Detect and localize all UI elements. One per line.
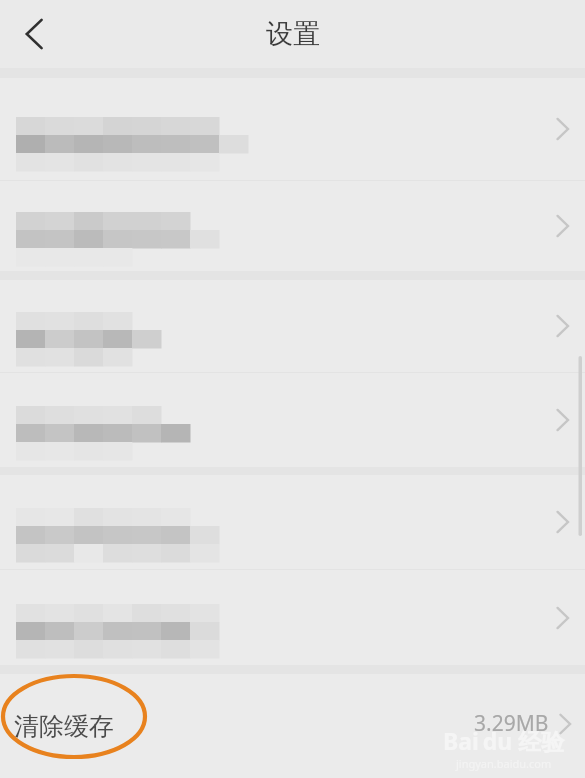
button[interactable]: [0, 475, 585, 569]
staticText: Bai du 经验: [443, 725, 565, 756]
button[interactable]: 清除缓存: [0, 674, 585, 777]
button[interactable]: [0, 280, 585, 372]
staticText: 清除缓存: [14, 711, 114, 742]
staticText: 设置: [266, 17, 320, 51]
staticText: 3.29MB: [474, 709, 549, 738]
button[interactable]: [0, 78, 585, 180]
button[interactable]: [0, 570, 585, 665]
button[interactable]: [0, 181, 585, 271]
button[interactable]: Back: [12, 12, 56, 56]
button[interactable]: [0, 373, 585, 467]
